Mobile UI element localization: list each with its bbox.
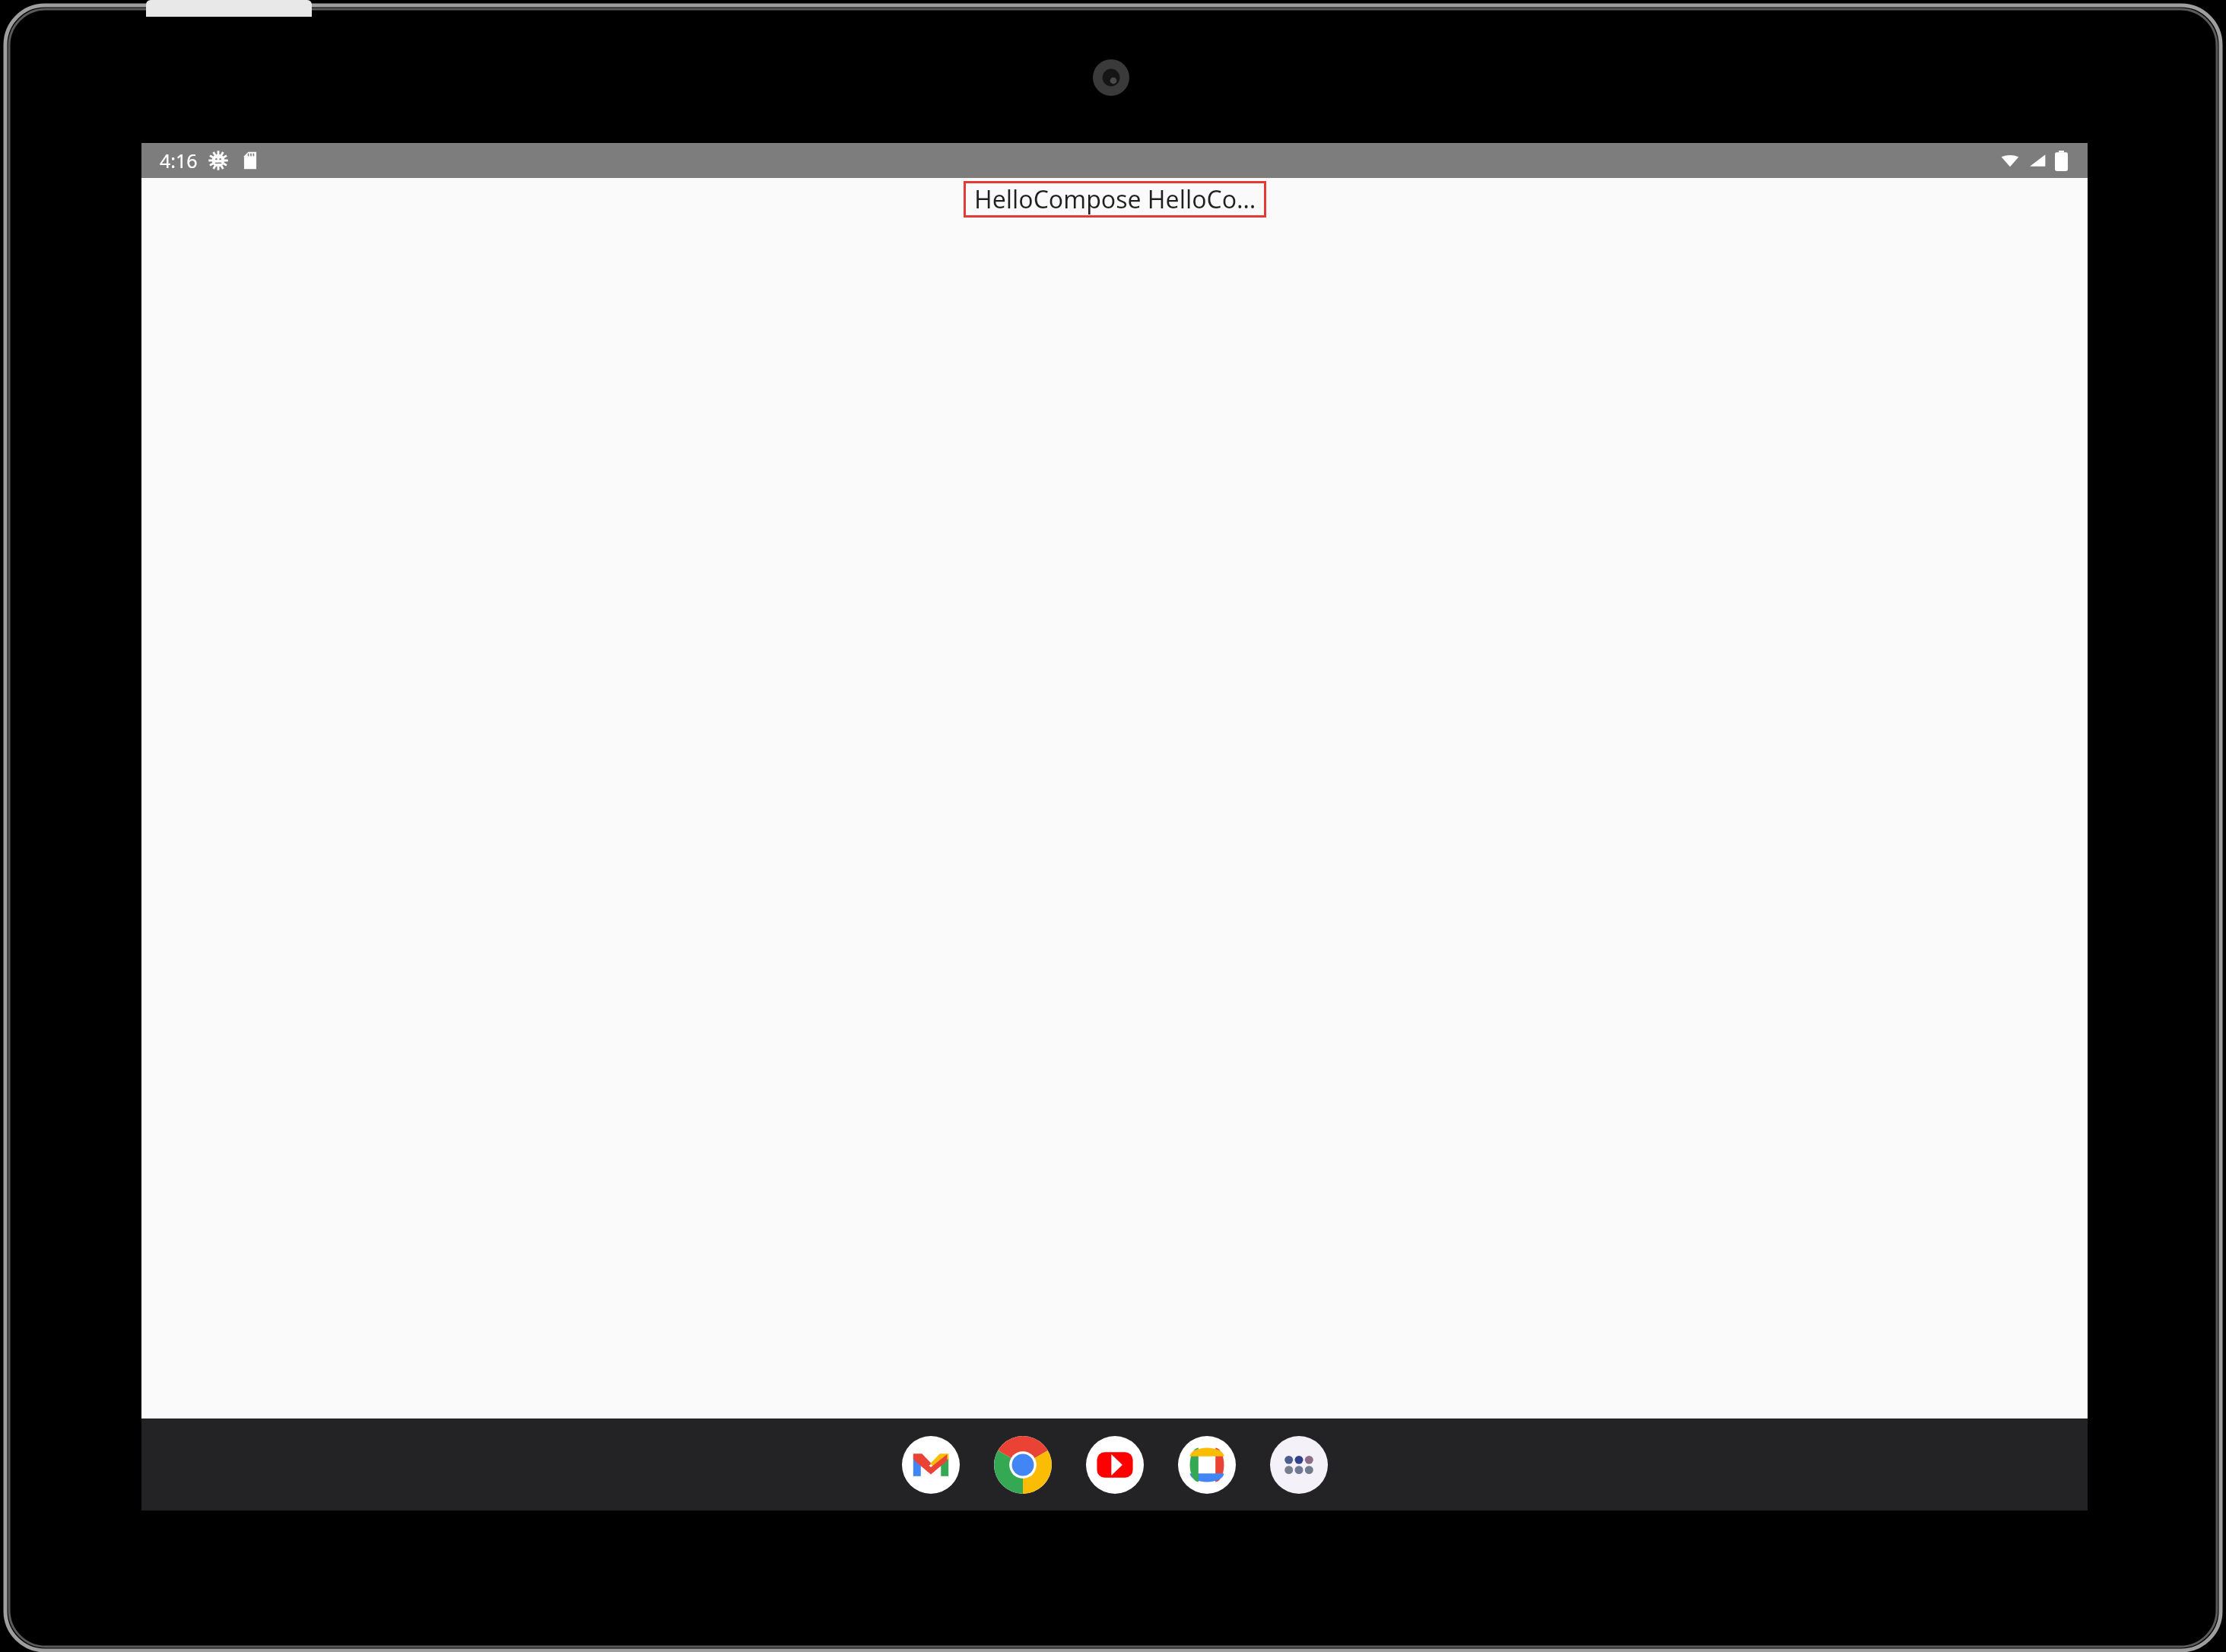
button[interactable]: Google Photos (1178, 1436, 1236, 1494)
button[interactable]: All apps (1270, 1436, 1328, 1494)
button[interactable]: HelloCompose HelloCo… (964, 181, 1266, 218)
button[interactable]: YouTube (1086, 1436, 1144, 1494)
button[interactable]: Gmail (902, 1436, 960, 1494)
button[interactable]: Chrome (994, 1436, 1052, 1494)
staticText: 4:16 (160, 148, 198, 173)
staticText: HelloCompose HelloCo… (974, 183, 1256, 216)
